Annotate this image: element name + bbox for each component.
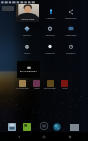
button[interactable]: Recents — [63, 132, 77, 141]
button[interactable]: Nicolas Cage — [16, 4, 39, 22]
button[interactable]: Browser — [61, 43, 81, 55]
button[interactable]: Back — [12, 132, 26, 141]
button[interactable]: The Message — [15, 80, 29, 94]
staticText: B L A C K B E R R Y — [20, 70, 37, 73]
button[interactable]: Gallery — [17, 25, 37, 37]
staticText: Video — [34, 87, 40, 90]
button[interactable]: Camera — [8, 123, 16, 131]
button[interactable]: Home — [37, 132, 51, 141]
button[interactable]: Browser — [53, 123, 61, 131]
staticText: Messages — [65, 33, 77, 36]
button[interactable]: Apps — [40, 122, 48, 130]
staticText: Weather — [45, 51, 55, 54]
button[interactable]: Clock — [17, 43, 37, 55]
button[interactable]: Settings — [40, 25, 60, 37]
button[interactable]: Bluetooth — [61, 8, 81, 20]
staticText: Settings — [45, 33, 55, 36]
button[interactable]: Camera — [40, 8, 60, 20]
staticText: Gallery — [23, 33, 31, 36]
staticText: Clock — [24, 51, 30, 54]
staticText: Camera — [46, 16, 55, 19]
staticText: Book Reader — [44, 87, 56, 90]
button[interactable]: Messages — [61, 25, 81, 37]
staticText: Bluetooth — [65, 16, 77, 19]
button[interactable]: Video — [29, 80, 43, 94]
staticText: Email — [62, 87, 68, 90]
button[interactable]: Email — [57, 80, 71, 94]
button[interactable]: Phone — [23, 123, 31, 131]
staticText: The Message — [16, 87, 29, 90]
button[interactable]: Book Reader — [43, 80, 57, 94]
button[interactable]: B L A C K B E R R Y — [17, 61, 40, 78]
staticText: Nicolas Cage — [21, 18, 35, 21]
staticText: Browser — [66, 51, 76, 54]
button[interactable]: Weather — [40, 43, 60, 55]
